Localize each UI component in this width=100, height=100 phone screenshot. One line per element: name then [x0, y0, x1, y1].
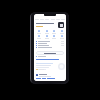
button[interactable] — [35, 30, 42, 34]
button[interactable]: Open code — [58, 22, 64, 28]
button[interactable] — [36, 51, 64, 55]
button[interactable] — [58, 35, 65, 39]
button[interactable] — [36, 46, 64, 48]
button[interactable] — [43, 35, 50, 39]
button[interactable] — [36, 40, 64, 42]
button[interactable] — [58, 30, 65, 34]
button[interactable] — [50, 30, 57, 34]
button[interactable] — [36, 42, 64, 44]
button[interactable] — [50, 35, 57, 39]
button[interactable] — [35, 35, 42, 39]
button[interactable] — [43, 30, 50, 34]
button[interactable] — [36, 44, 64, 46]
